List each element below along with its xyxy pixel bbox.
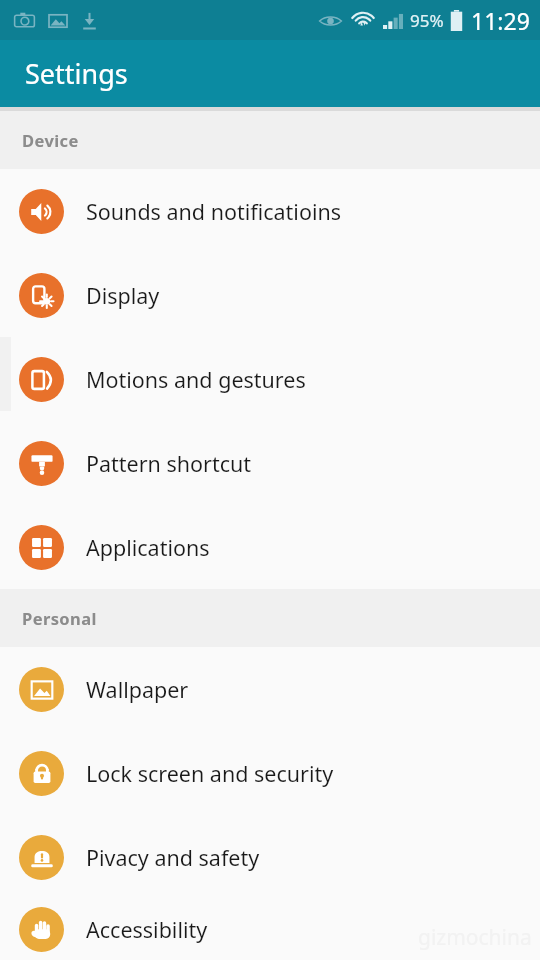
staticText: Applications <box>86 533 210 562</box>
other: Gallery <box>48 11 68 31</box>
button[interactable]: Display <box>0 253 540 337</box>
staticText: Sounds and notificatioins <box>86 197 342 226</box>
staticText: Lock screen and security <box>86 759 334 788</box>
staticText: Wallpaper <box>86 675 189 704</box>
staticText: Pattern shortcut <box>86 449 252 478</box>
button[interactable]: Pivacy and safety <box>0 815 540 899</box>
button[interactable]: Wallpaper <box>0 647 540 731</box>
staticText: Accessibility <box>86 915 208 944</box>
button[interactable]: Sounds and notificatioins <box>0 169 540 253</box>
staticText: Pivacy and safety <box>86 843 260 872</box>
staticText: Display <box>86 281 160 310</box>
staticText: Motions and gestures <box>86 365 306 394</box>
staticText: 11:29 <box>471 5 530 36</box>
other: Camera <box>14 10 35 31</box>
staticText: Settings <box>25 55 128 92</box>
button[interactable]: Accessibility <box>0 899 540 960</box>
staticText: 95% <box>410 9 444 32</box>
button[interactable]: Pattern shortcut <box>0 421 540 505</box>
button[interactable]: Lock screen and security <box>0 731 540 815</box>
other: Download <box>81 11 98 30</box>
button[interactable]: Applications <box>0 505 540 589</box>
button[interactable]: Motions and gestures <box>0 337 540 421</box>
staticText: Personal <box>22 607 97 629</box>
staticText: Device <box>22 129 79 151</box>
